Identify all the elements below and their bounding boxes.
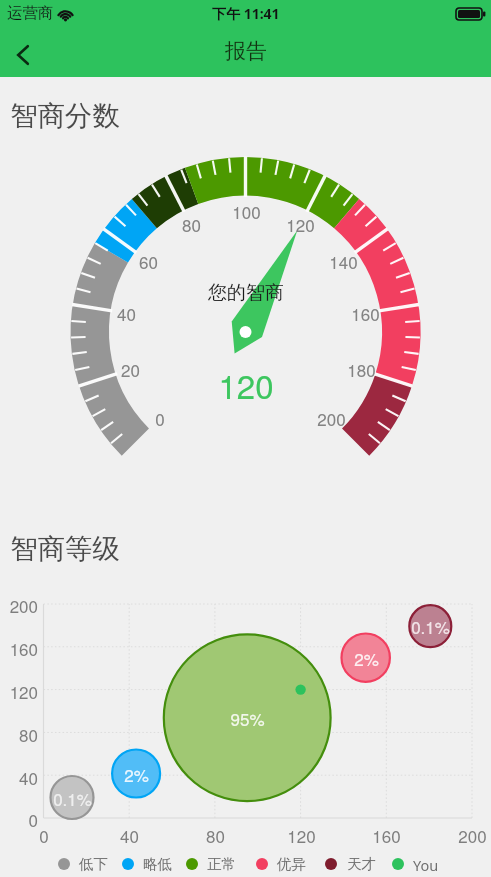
- staticText: 下午 11:41: [212, 4, 280, 23]
- staticText: 0: [28, 807, 38, 831]
- staticText: 0.1%: [411, 614, 450, 638]
- staticText: 80: [182, 212, 201, 236]
- staticText: 60: [139, 249, 158, 273]
- staticText: 0: [155, 406, 165, 430]
- button[interactable]: Back: [0, 28, 48, 77]
- staticText: 160: [372, 823, 401, 847]
- staticText: 0: [39, 823, 49, 847]
- staticText: 您的智商: [208, 281, 284, 305]
- staticText: 智商分数: [10, 99, 120, 134]
- staticText: 0.1%: [53, 786, 92, 810]
- staticText: 200: [458, 823, 487, 847]
- staticText: 2%: [354, 646, 379, 670]
- staticText: 80: [206, 823, 225, 847]
- staticText: 报告: [225, 38, 267, 64]
- staticText: 40: [117, 301, 136, 325]
- staticText: 40: [120, 823, 139, 847]
- staticText: 120: [286, 212, 315, 236]
- button[interactable]: [325, 858, 337, 870]
- staticText: 2%: [124, 762, 149, 786]
- staticText: 120: [218, 361, 274, 405]
- staticText: 80: [19, 722, 38, 746]
- staticText: 200: [317, 406, 346, 430]
- staticText: 160: [351, 301, 380, 325]
- button[interactable]: [186, 858, 198, 870]
- button[interactable]: [122, 858, 134, 870]
- staticText: 天才: [347, 855, 376, 873]
- staticText: 160: [9, 636, 38, 660]
- staticText: 智商等级: [10, 532, 120, 567]
- staticText: 140: [329, 249, 358, 273]
- staticText: 40: [19, 765, 38, 789]
- staticText: 200: [9, 593, 38, 617]
- button[interactable]: [58, 858, 70, 870]
- staticText: 略低: [143, 855, 172, 873]
- staticText: 120: [287, 823, 316, 847]
- staticText: You: [413, 855, 439, 875]
- button[interactable]: [256, 858, 268, 870]
- staticText: 95%: [230, 706, 265, 730]
- staticText: 180: [347, 357, 376, 381]
- staticText: 120: [9, 679, 38, 703]
- staticText: 运营商: [7, 3, 54, 23]
- staticText: 低下: [79, 855, 108, 873]
- staticText: 优异: [277, 855, 306, 873]
- staticText: 20: [121, 357, 140, 381]
- staticText: 正常: [207, 855, 236, 873]
- staticText: 100: [232, 199, 261, 223]
- button[interactable]: [392, 858, 404, 870]
